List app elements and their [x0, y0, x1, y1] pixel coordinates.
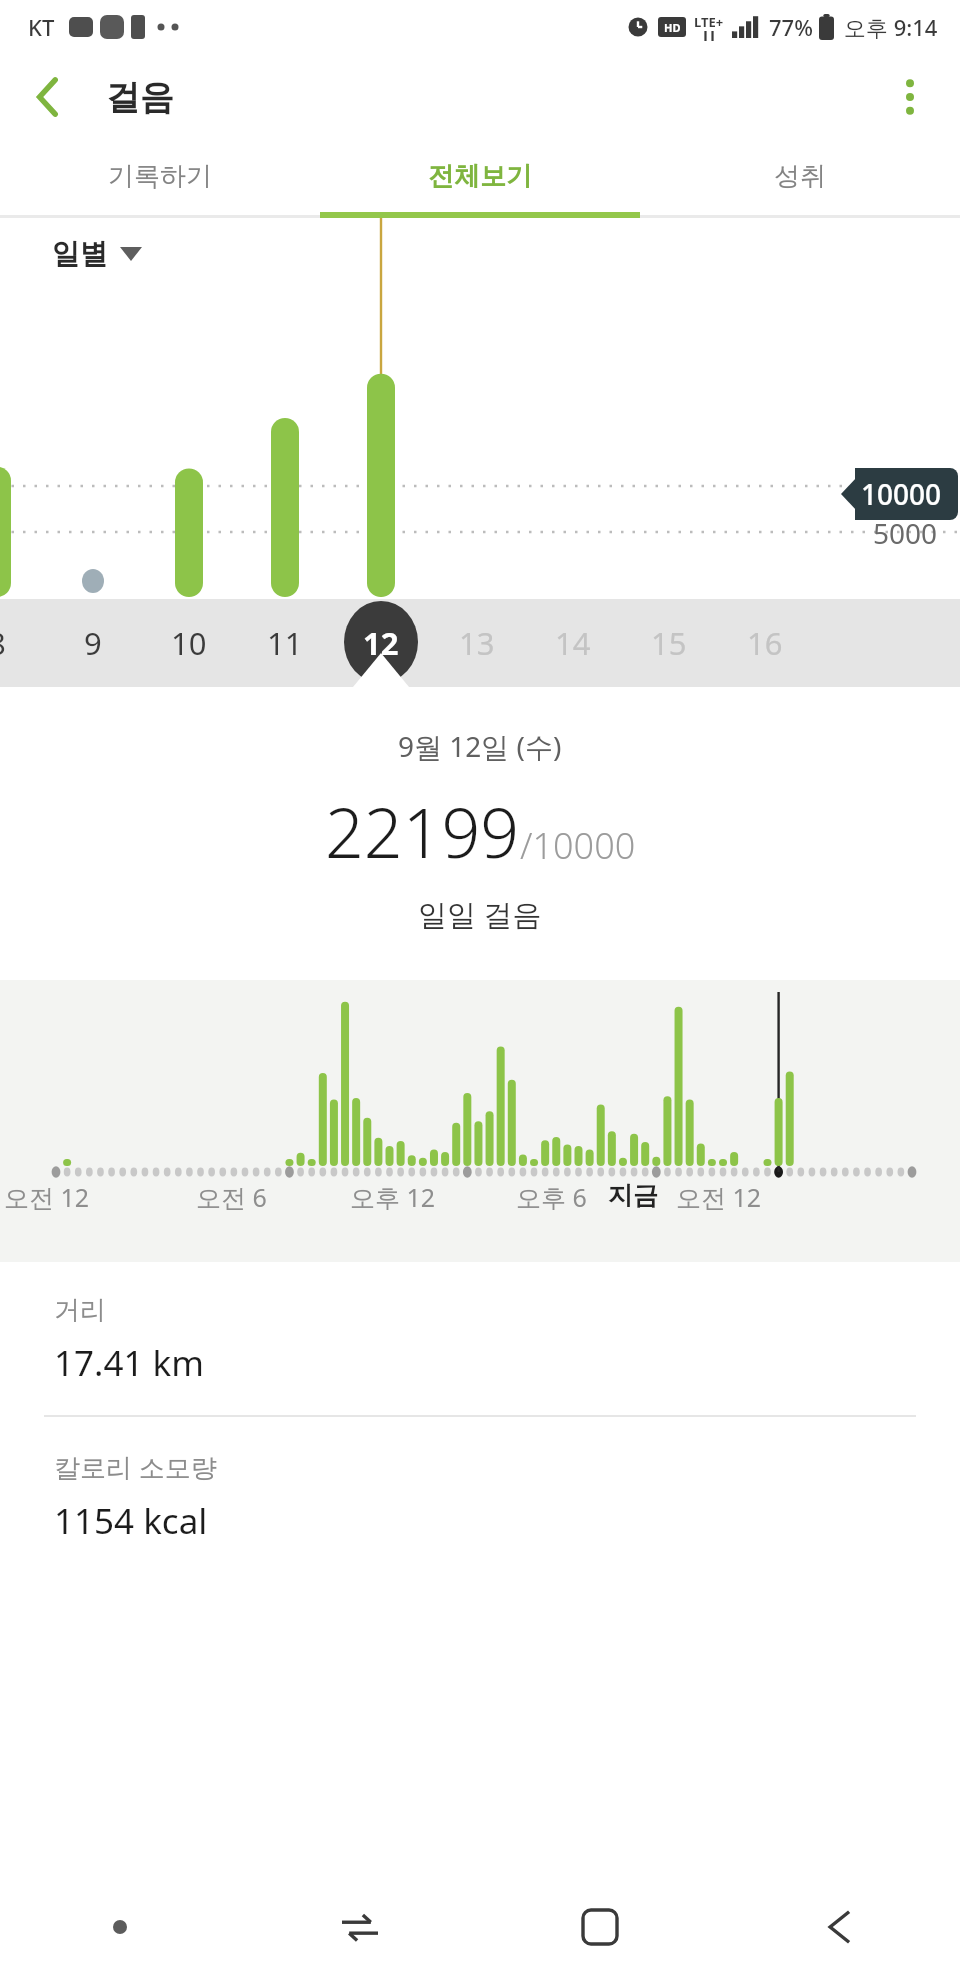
staticText: 칼로리 소모량 [54, 1449, 217, 1485]
staticText: 오전 12 [676, 1180, 762, 1214]
staticText: 성취 [774, 160, 826, 193]
button[interactable]: 거리 [0, 1262, 960, 1415]
staticText: 14 [555, 622, 591, 664]
staticText: 오후 9:14 [844, 12, 938, 42]
staticText: 9월 12일 (수) [398, 727, 562, 765]
staticText: LTE+ [694, 13, 724, 31]
button[interactable]: 16 [717, 599, 813, 687]
staticText: 기록하기 [108, 160, 212, 193]
staticText: 77% [769, 12, 813, 42]
button[interactable]: 일별 [52, 236, 142, 271]
staticText: 11 [267, 622, 303, 664]
button[interactable]: 기록하기 [0, 140, 320, 212]
button[interactable]: 전체보기 [320, 140, 640, 212]
staticText: 오후 6 [516, 1180, 587, 1214]
button[interactable]: More options [878, 65, 942, 129]
staticText: 지금 [608, 1180, 658, 1211]
button[interactable]: Home [480, 1881, 720, 1973]
staticText: KT [28, 12, 55, 42]
staticText: /10000 [520, 821, 636, 870]
button[interactable]: Back [16, 65, 80, 129]
staticText: 오후 12 [350, 1180, 436, 1214]
staticText: 9 [84, 622, 102, 664]
staticText: 일별 [52, 236, 108, 271]
button[interactable]: 9 [45, 599, 141, 687]
button[interactable]: 칼로리 소모량 [0, 1417, 960, 1573]
staticText: 거리 [54, 1294, 106, 1327]
staticText: 10000 [861, 475, 942, 513]
staticText: 12 [363, 622, 399, 664]
staticText: 걸음 [106, 76, 174, 119]
button[interactable]: Menu [0, 1881, 240, 1973]
button[interactable]: 성취 [640, 140, 960, 212]
button[interactable]: 12 [333, 599, 429, 687]
staticText: 16 [747, 622, 783, 664]
button[interactable]: Recent apps [240, 1881, 480, 1973]
button[interactable]: 15 [621, 599, 717, 687]
button[interactable]: 10 [141, 599, 237, 687]
staticText: 17.41 km [54, 1339, 204, 1387]
staticText: 8 [0, 622, 6, 664]
button[interactable]: 8 [0, 599, 45, 687]
button[interactable]: Back [720, 1881, 960, 1973]
button[interactable]: 11 [237, 599, 333, 687]
staticText: 13 [459, 622, 495, 664]
staticText: 오전 12 [4, 1180, 90, 1214]
button[interactable]: 14 [525, 599, 621, 687]
staticText: 15 [651, 622, 687, 664]
staticText: HD [664, 20, 681, 35]
staticText: 전체보기 [428, 160, 532, 193]
staticText: 10 [171, 622, 207, 664]
button[interactable]: 13 [429, 599, 525, 687]
staticText: 22199 [325, 785, 520, 878]
staticText: 오전 6 [196, 1180, 267, 1214]
staticText: 1154 kcal [54, 1497, 208, 1545]
staticText: 5000 [873, 514, 938, 552]
staticText: 일일 걸음 [418, 894, 542, 934]
